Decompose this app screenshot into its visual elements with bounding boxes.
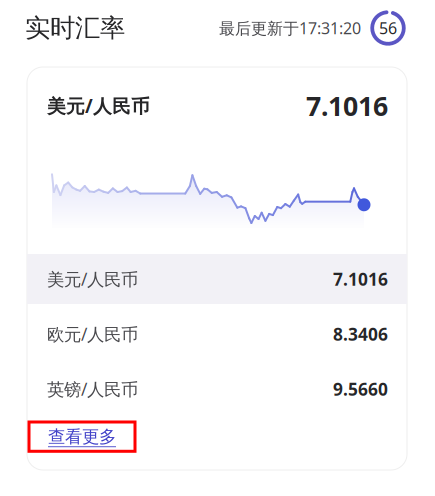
staticText: 英镑/人民币 [47,377,138,400]
staticText: 欧元/人民币 [47,322,138,345]
staticText: 美元/人民币 [47,267,138,290]
button[interactable]: 欧元/人民币 [27,306,407,361]
staticText: 56 [379,17,397,39]
staticText: 7.1016 [306,88,388,123]
staticText: 实时汇率 [25,12,125,43]
staticText: 9.5660 [333,377,388,400]
staticText: 7.1016 [333,267,388,290]
button[interactable]: 查看更多 [29,422,135,451]
button[interactable]: 美元/人民币 [27,251,407,306]
staticText: 8.3406 [333,322,388,345]
staticText: 最后更新于17:31:20 [219,17,361,39]
staticText: 美元/人民币 [47,93,150,118]
button[interactable]: 英镑/人民币 [27,361,407,416]
staticText: 查看更多 [48,426,116,447]
